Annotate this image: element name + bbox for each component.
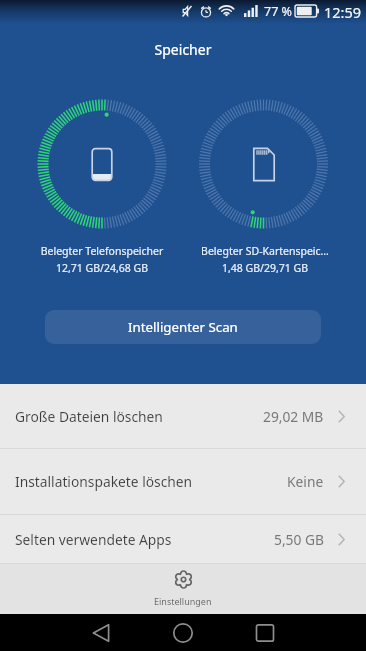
staticText: 29,02 MB — [263, 407, 324, 426]
staticText: Installationspakete löschen — [15, 472, 193, 491]
other: Einstellungen — [175, 571, 192, 588]
staticText: 12,71 GB/24,68 GB — [28, 261, 176, 275]
staticText: Selten verwendete Apps — [15, 530, 172, 549]
staticText: Belegter Telefonspeicher — [28, 244, 176, 258]
button[interactable]: Back — [83, 615, 119, 651]
staticText: 12:59 — [324, 2, 362, 22]
staticText: 1,48 GB/29,71 GB — [191, 261, 339, 275]
button[interactable]: Intelligenter Scan — [45, 310, 321, 344]
button[interactable]: Große Dateien löschen — [0, 384, 366, 448]
staticText: Einstellungen — [154, 595, 212, 607]
staticText: Große Dateien löschen — [15, 407, 163, 426]
button[interactable]: Selten verwendete Apps — [0, 515, 366, 563]
staticText: Keine — [287, 472, 324, 491]
button[interactable]: Installationspakete löschen — [0, 449, 366, 514]
staticText: 77 % — [264, 3, 292, 20]
staticText: Belegter SD-Kartenspeic… — [191, 244, 339, 258]
button[interactable]: Recent apps — [247, 615, 283, 651]
button[interactable]: Einstellungen — [128, 566, 238, 612]
button[interactable]: Home — [165, 615, 201, 651]
staticText: Intelligenter Scan — [128, 318, 238, 336]
staticText: 5,50 GB — [274, 530, 324, 549]
staticText: Speicher — [0, 40, 366, 59]
